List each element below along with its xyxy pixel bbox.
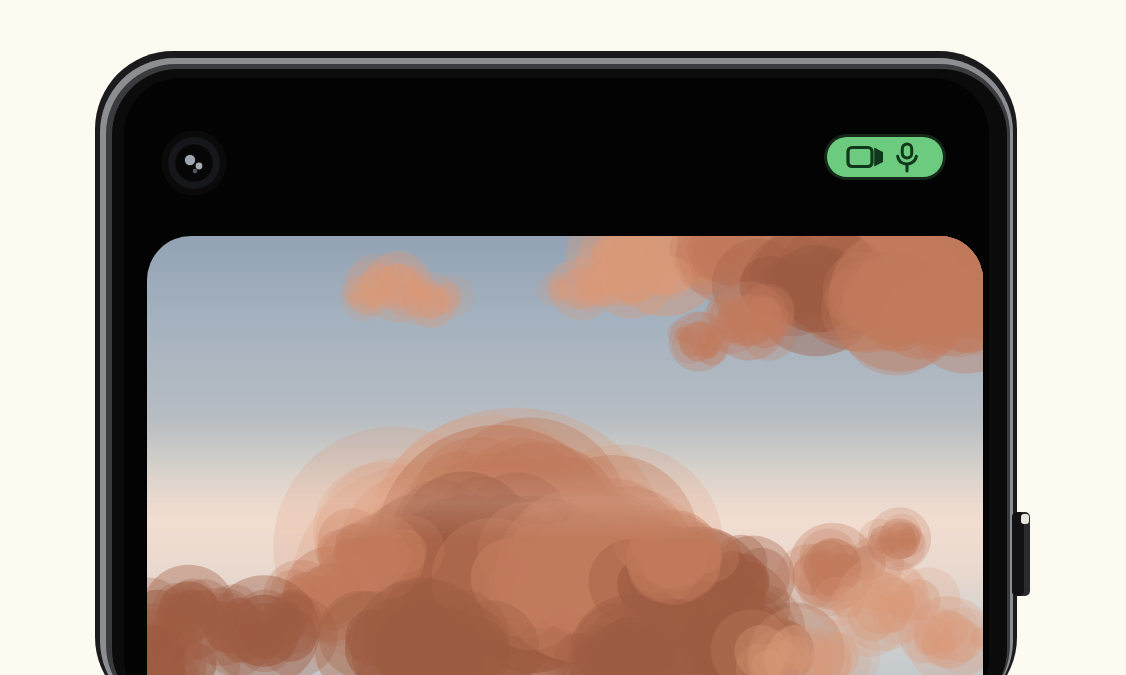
- button[interactable]: Camera and microphone in use: [0, 0, 1126, 675]
- button[interactable]: Camera and microphone in use: [0, 0, 1126, 675]
